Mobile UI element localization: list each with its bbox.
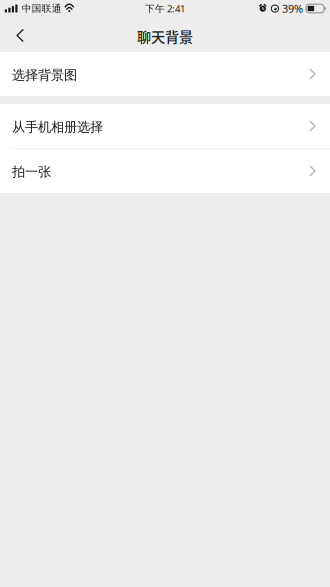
- staticText: 下午 2:41: [145, 2, 185, 15]
- staticText: 拍一张: [12, 164, 51, 180]
- button[interactable]: 选择背景图: [0, 52, 330, 96]
- button[interactable]: 从手机相册选择: [0, 104, 330, 148]
- staticText: 从手机相册选择: [12, 119, 103, 135]
- staticText: 选择背景图: [12, 67, 77, 83]
- button[interactable]: 拍一张: [0, 149, 330, 193]
- staticText: 聊天背景: [137, 26, 193, 46]
- staticText: 中国联通: [22, 2, 62, 15]
- staticText: 39%: [282, 1, 303, 16]
- button[interactable]: Back: [0, 22, 44, 52]
